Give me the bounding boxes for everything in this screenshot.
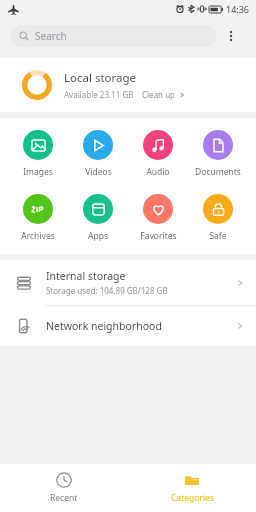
staticText: Categories: [171, 492, 214, 504]
staticText: Favorites: [140, 230, 177, 242]
button[interactable]: Local storage: [0, 58, 256, 112]
button[interactable]: Images: [8, 128, 68, 180]
button[interactable]: Videos: [68, 128, 128, 180]
button[interactable]: Internal storage: [0, 260, 256, 305]
button[interactable]: More options: [216, 21, 246, 51]
staticText: Storage used: 104.89 GB/128 GB: [46, 285, 168, 296]
staticText: Audio: [146, 166, 170, 178]
button[interactable]: Apps: [68, 192, 128, 244]
staticText: Images: [23, 166, 53, 178]
button[interactable]: Search: [10, 25, 216, 47]
button[interactable]: Recent: [0, 464, 128, 512]
staticText: Clean up: [142, 89, 176, 100]
button[interactable]: Safe: [188, 192, 248, 244]
button[interactable]: Archives: [8, 192, 68, 244]
staticText: Documents: [195, 166, 241, 178]
staticText: 14:36: [226, 3, 250, 15]
button[interactable]: Categories: [128, 464, 256, 512]
staticText: Local storage: [64, 70, 137, 86]
staticText: Recent: [50, 492, 78, 504]
button[interactable]: Network neighborhood: [0, 306, 256, 346]
button[interactable]: Documents: [188, 128, 248, 180]
staticText: Available 23.11 GB: [64, 89, 134, 100]
staticText: Apps: [88, 230, 108, 242]
button[interactable]: Favorites: [128, 192, 188, 244]
staticText: Safe: [209, 230, 227, 242]
button[interactable]: Audio: [128, 128, 188, 180]
staticText: Internal storage: [46, 269, 126, 283]
staticText: Videos: [85, 166, 112, 178]
staticText: Archives: [21, 230, 55, 242]
staticText: Network neighborhood: [46, 319, 236, 333]
staticText: Search: [35, 29, 67, 43]
